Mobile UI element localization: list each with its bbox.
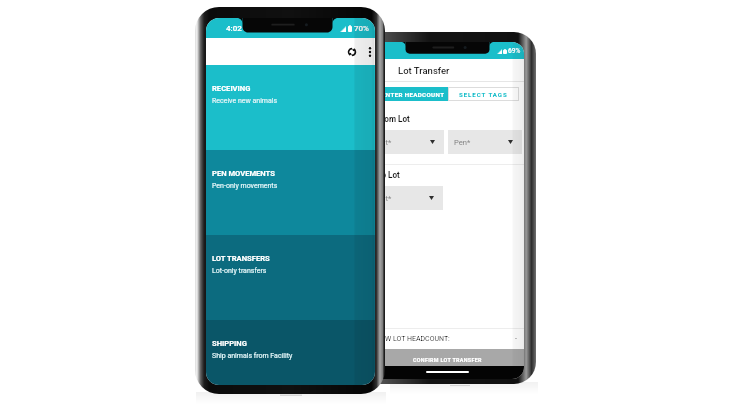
button[interactable]: SELECT TAGS [448,87,519,101]
staticText: PEN MOVEMENTS [212,169,275,178]
staticText: NEW LOT HEADCOUNT: [376,335,450,343]
staticText: Lot* [377,138,392,147]
staticText: LOT TRANSFERS [212,254,270,263]
staticText: Receive new animals [212,97,278,105]
staticText: 69% [508,47,521,55]
button[interactable]: PEN MOVEMENTS [206,150,375,235]
button[interactable]: More options [365,42,375,61]
button[interactable]: LOT TRANSFERS [206,235,375,320]
button[interactable]: Sync [342,42,361,61]
staticText: 4:02 [226,24,242,33]
staticText: 70% [354,24,369,33]
staticText: From Lot [377,114,410,124]
staticText: Lot* [377,194,392,203]
staticText: RECEIVING [212,84,251,93]
staticText: CONFIRM LOT TRANSFER [413,357,482,363]
button[interactable]: CONFIRM LOT TRANSFER [371,349,524,366]
button[interactable]: Lot* [371,130,444,154]
staticText: - [515,335,517,343]
staticText: SELECT TAGS [459,91,508,98]
staticText: Lot-only transfers [212,267,267,275]
staticText: Pen-only movements [212,182,278,190]
button[interactable]: Lot* [371,186,443,210]
staticText: Ship animals from Facility [212,352,293,360]
button[interactable]: RECEIVING [206,65,375,150]
button[interactable]: ENTER HEADCOUNT [378,87,448,101]
staticText: ENTER HEADCOUNT [382,91,445,98]
staticText: To Lot [377,170,400,180]
staticText: Pen* [454,138,471,147]
staticText: SHIPPING [212,339,247,348]
button[interactable]: SHIPPING [206,320,375,385]
staticText: Lot Transfer [398,65,450,76]
button[interactable]: Pen* [448,130,522,154]
